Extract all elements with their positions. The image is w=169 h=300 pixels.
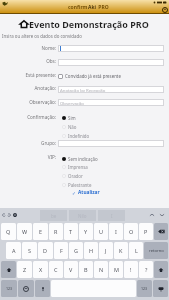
button[interactable]: Shift — [1, 261, 16, 278]
button[interactable]: Shift — [154, 261, 168, 278]
button[interactable]: Backspace — [154, 223, 168, 240]
button[interactable]: Indefinido — [62, 132, 112, 140]
button[interactable]: F — [54, 242, 68, 259]
button[interactable]: D — [38, 242, 53, 259]
button[interactable]: Clipboard — [12, 212, 18, 218]
staticText: PRO — [97, 4, 109, 11]
button[interactable]: O — [124, 223, 138, 240]
button[interactable]: Q — [1, 223, 16, 240]
staticText: Está presente: — [25, 72, 56, 78]
staticText: U — [99, 228, 104, 235]
staticText: Observação — [60, 100, 84, 106]
staticText: M — [114, 266, 119, 273]
button[interactable]: ? — [139, 261, 153, 278]
button[interactable]: I — [109, 223, 123, 240]
staticText: X — [39, 266, 43, 273]
button[interactable]: ✓ — [72, 189, 100, 196]
staticText: D — [43, 247, 48, 254]
button[interactable]: T — [64, 223, 78, 240]
button[interactable]: Imprensa — [62, 163, 112, 171]
button[interactable]: B — [79, 261, 93, 278]
staticText: F — [60, 247, 63, 254]
button[interactable]: K — [114, 242, 128, 259]
staticText: R — [54, 228, 58, 235]
button[interactable]: V — [64, 261, 78, 278]
button[interactable]: M — [109, 261, 123, 278]
staticText: S — [28, 247, 32, 254]
button[interactable]: Voice input — [35, 280, 50, 297]
button[interactable]: N — [94, 261, 108, 278]
staticText: 123 — [6, 286, 13, 291]
button[interactable]: Z — [17, 261, 32, 278]
button[interactable]: L — [129, 242, 143, 259]
button[interactable]: Previous — [149, 212, 155, 218]
button[interactable]: Y — [79, 223, 93, 240]
staticText: Nilo — [78, 213, 87, 219]
staticText: Grupo: — [41, 140, 56, 146]
staticText: E — [39, 228, 43, 235]
button[interactable]: H — [84, 242, 98, 259]
staticText: H — [89, 247, 94, 254]
staticText: be — [51, 213, 57, 219]
button[interactable] — [58, 140, 164, 147]
button[interactable]: 123 — [1, 280, 17, 297]
button[interactable]: P — [139, 223, 153, 240]
staticText: Y — [84, 228, 88, 235]
button[interactable]: X — [33, 261, 48, 278]
button[interactable]: Sim — [62, 114, 112, 122]
staticText: Observação: — [29, 99, 56, 105]
staticText: ? — [145, 266, 148, 273]
staticText: Sim — [68, 115, 76, 121]
button[interactable]: retorno — [144, 242, 168, 259]
button[interactable]: Next — [159, 212, 165, 218]
staticText: ✓ — [72, 190, 78, 196]
button[interactable]: W — [17, 223, 32, 240]
button[interactable]: C — [49, 261, 63, 278]
button[interactable]: Redo — [6, 212, 12, 218]
staticText: Evento Demonstração PRO — [29, 18, 149, 30]
button[interactable]: Evento Demonstração PRO — [20, 18, 149, 30]
button[interactable]: Convidado já está presente — [58, 72, 121, 80]
button[interactable]: Emoji — [18, 280, 34, 297]
button[interactable] — [58, 59, 164, 66]
staticText: G — [74, 247, 79, 254]
button[interactable]: E — [33, 223, 48, 240]
button[interactable]: A — [6, 242, 21, 259]
button[interactable]: G — [69, 242, 83, 259]
staticText: Insira ou altere os dados do convidado — [2, 33, 82, 39]
button[interactable]: ! — [124, 261, 138, 278]
button[interactable]: J — [99, 242, 113, 259]
staticText: 123 — [141, 286, 148, 291]
staticText: W — [22, 228, 28, 235]
button[interactable]: S — [22, 242, 37, 259]
button[interactable]: Palestrante — [62, 181, 112, 189]
button[interactable]: Sem indicação — [62, 155, 112, 163]
button[interactable]: Hide keyboard — [153, 280, 168, 297]
button[interactable]: Anotação by Recepção — [58, 86, 164, 93]
button[interactable] — [58, 45, 164, 52]
staticText: Anotação: — [34, 85, 56, 91]
staticText: Sem indicação — [68, 156, 98, 162]
staticText: VIP: — [47, 154, 56, 160]
button[interactable]: Não — [62, 123, 112, 131]
button[interactable]: Observação — [58, 99, 164, 106]
staticText: Obs: — [46, 58, 56, 64]
button[interactable]: Undo — [1, 212, 7, 218]
staticText: Z — [23, 266, 27, 273]
staticText: Aki — [88, 4, 97, 11]
button[interactable]: U — [94, 223, 108, 240]
button[interactable]: Orador — [62, 172, 112, 180]
staticText: Convidado já está presente — [65, 73, 121, 79]
button[interactable]: R — [49, 223, 63, 240]
button[interactable]: 123 — [137, 280, 152, 297]
staticText: C — [54, 266, 58, 273]
staticText: T — [69, 228, 73, 235]
staticText: Não — [68, 124, 77, 130]
staticText: N — [99, 266, 104, 273]
staticText: Nome: — [41, 45, 56, 51]
staticText: J — [105, 247, 107, 254]
